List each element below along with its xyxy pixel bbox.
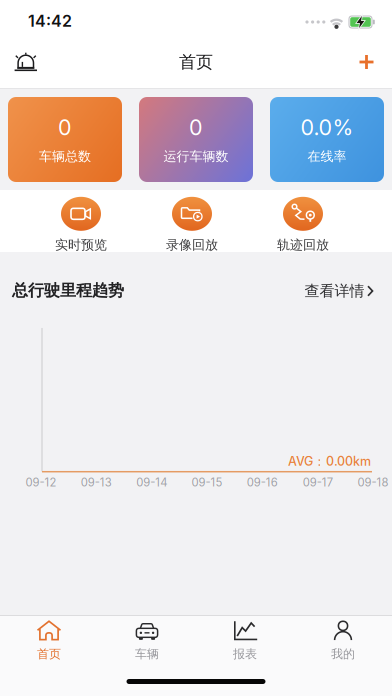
- staticText: 09-16: [247, 476, 278, 489]
- staticText: 车辆总数: [39, 148, 91, 165]
- button[interactable]: Add: [347, 42, 386, 81]
- button[interactable]: 实时预览: [29, 193, 133, 253]
- staticText: 实时预览: [55, 237, 107, 253]
- button[interactable]: 首页: [0, 616, 98, 674]
- staticText: 我的: [331, 646, 355, 661]
- staticText: 车辆: [135, 646, 159, 661]
- staticText: 首页: [179, 51, 213, 73]
- button[interactable]: 我的: [294, 616, 392, 674]
- staticText: 0: [58, 114, 72, 140]
- button[interactable]: 轨迹回放: [251, 193, 355, 253]
- staticText: 09-17: [303, 476, 333, 489]
- staticText: 09-15: [191, 476, 222, 489]
- staticText: 14:42: [28, 11, 72, 31]
- staticText: 0.0%: [300, 114, 353, 140]
- staticText: 查看详情: [304, 282, 364, 300]
- staticText: 09-12: [25, 476, 56, 489]
- button[interactable]: Alarms: [4, 42, 48, 80]
- staticText: 总行驶里程趋势: [12, 280, 124, 301]
- staticText: 09-14: [136, 476, 167, 489]
- staticText: AVG：0.00km: [288, 454, 371, 469]
- button[interactable]: 录像回放: [140, 193, 244, 253]
- staticText: 报表: [233, 646, 257, 661]
- staticText: 09-18: [357, 476, 388, 489]
- staticText: 09-13: [81, 476, 112, 489]
- staticText: 0: [189, 114, 203, 140]
- staticText: 运行车辆数: [163, 148, 228, 165]
- staticText: 录像回放: [166, 237, 218, 253]
- button[interactable]: 车辆: [98, 616, 196, 674]
- staticText: 在线率: [307, 148, 346, 165]
- button[interactable]: 报表: [196, 616, 294, 674]
- button[interactable]: 查看详情: [272, 277, 374, 305]
- staticText: 轨迹回放: [277, 237, 329, 253]
- staticText: 首页: [37, 646, 61, 661]
